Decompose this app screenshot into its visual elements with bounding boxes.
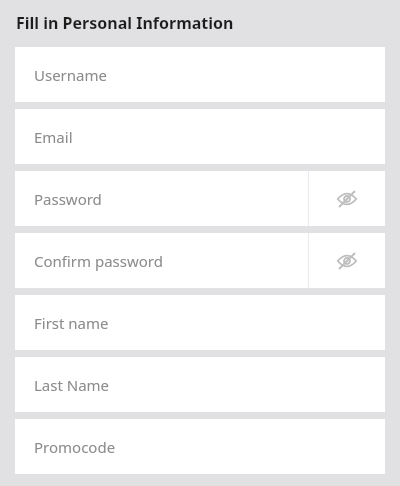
staticText: Username [34,65,107,85]
staticText: Fill in Personal Information [16,12,234,34]
button[interactable]: Password [15,171,385,226]
button[interactable]: Show password [309,233,385,288]
staticText: First name [34,313,109,333]
button[interactable]: Last Name [15,357,385,412]
button[interactable]: Email [15,109,385,164]
staticText: Confirm password [34,251,163,271]
button[interactable]: Show password [309,171,385,226]
staticText: Password [34,189,102,209]
button[interactable]: Username [15,47,385,102]
button[interactable]: First name [15,295,385,350]
button[interactable]: Confirm password [15,233,385,288]
button[interactable]: Promocode [15,419,385,474]
staticText: Last Name [34,375,110,395]
staticText: Promocode [34,437,116,457]
staticText: Email [34,127,73,147]
